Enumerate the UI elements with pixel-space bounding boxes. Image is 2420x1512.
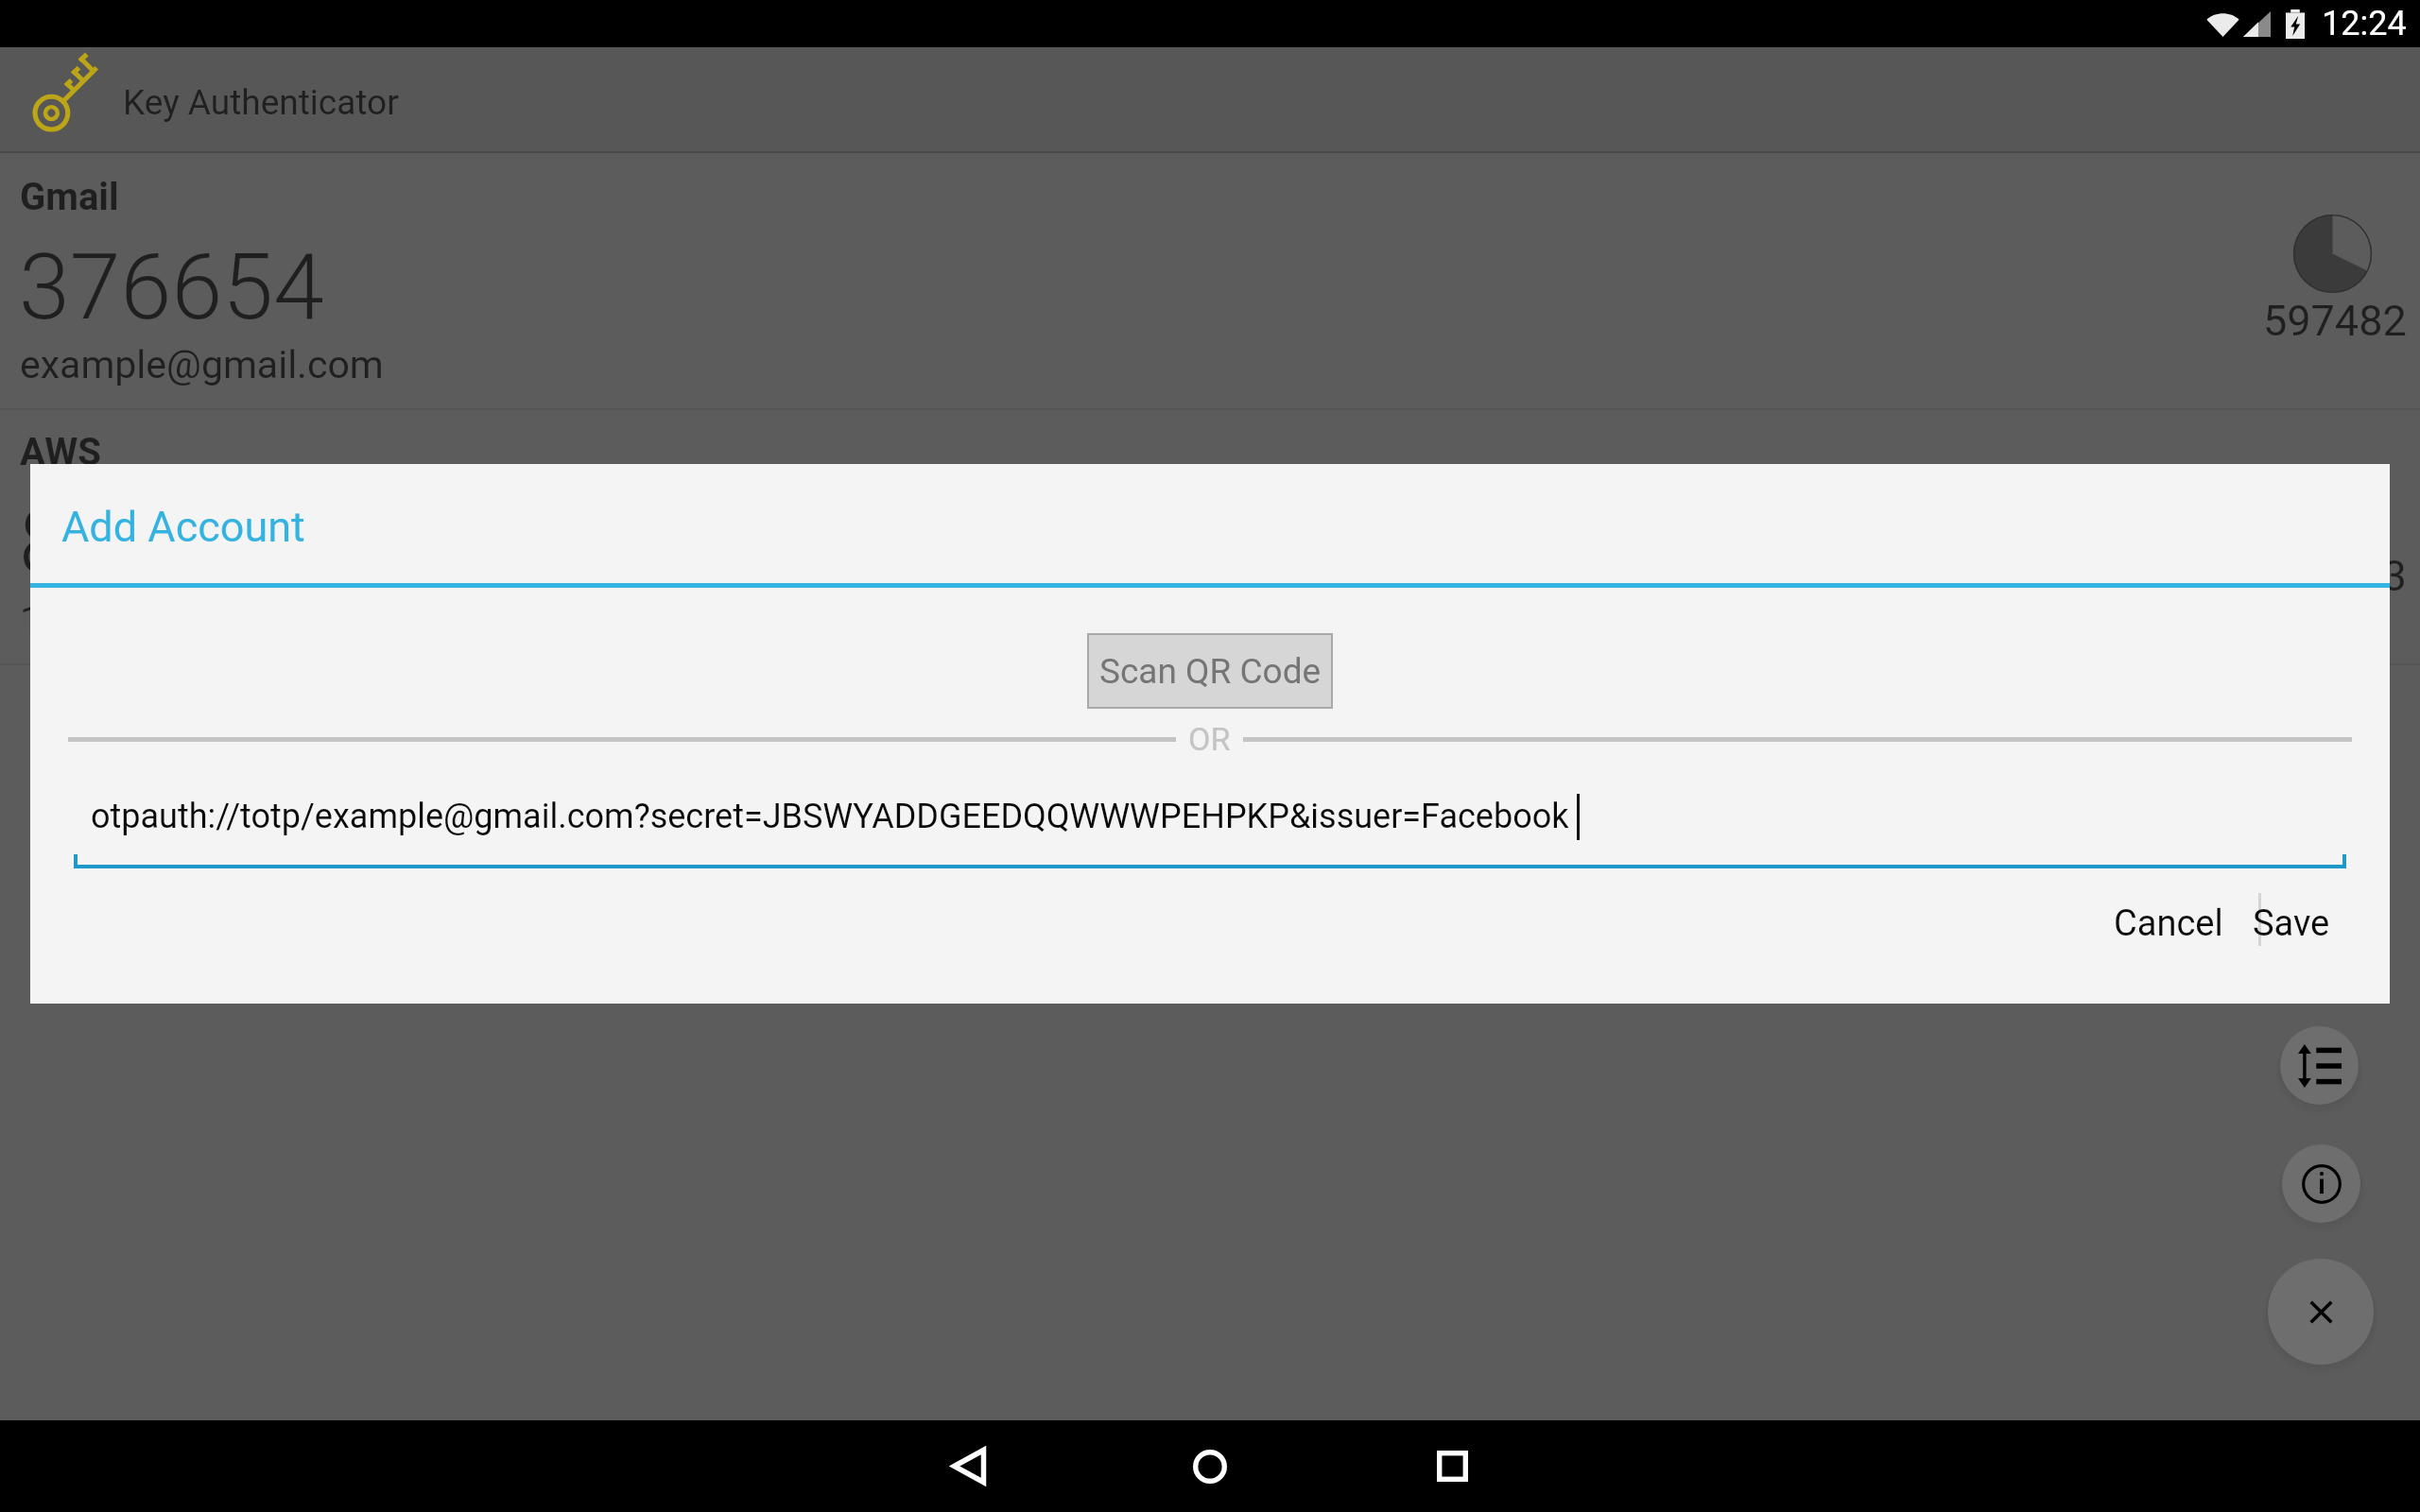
button[interactable]: Sort order	[2280, 1026, 2359, 1105]
staticText: Add Account	[61, 502, 305, 552]
staticText: 597482	[2263, 296, 2407, 346]
button[interactable]: About	[2282, 1144, 2360, 1223]
staticText: Scan QR Code	[1099, 651, 1322, 692]
button[interactable]: Cancel	[2087, 877, 2250, 970]
staticText: 1234567890	[20, 597, 238, 643]
staticText: AWS	[20, 430, 101, 474]
button[interactable]: Gmail	[0, 155, 2420, 408]
staticText: example@gmail.com	[20, 342, 384, 387]
button[interactable]: Back	[846, 1420, 1092, 1512]
button[interactable]: Scan QR Code	[1087, 633, 1333, 709]
staticText: Gmail	[20, 175, 119, 219]
staticText: Key Authenticator	[123, 82, 399, 123]
staticText: 221093	[2263, 551, 2407, 601]
staticText: otpauth://totp/example@gmail.com?secret=…	[91, 797, 1569, 836]
staticText: Save	[2253, 902, 2330, 945]
staticText: 12:24	[2322, 4, 2407, 43]
button[interactable]: Recents	[1329, 1420, 1575, 1512]
button[interactable]: Save	[2231, 877, 2352, 970]
staticText: Cancel	[2114, 902, 2223, 945]
staticText: OR	[1188, 720, 1231, 758]
button[interactable]: otpauth://totp/example@gmail.com?secret=…	[74, 776, 2346, 868]
button[interactable]: AWS	[0, 410, 2420, 663]
button[interactable]: Close menu	[2268, 1259, 2374, 1365]
staticText: 803817	[19, 489, 324, 596]
staticText: 376654	[19, 233, 324, 341]
button[interactable]: Home	[1087, 1420, 1333, 1512]
